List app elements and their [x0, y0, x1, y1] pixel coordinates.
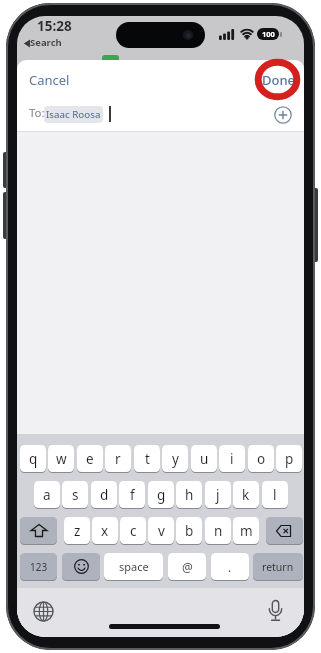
staticText: k	[242, 486, 250, 504]
button[interactable]	[267, 600, 284, 623]
button[interactable]: c	[120, 517, 146, 544]
button[interactable]: s	[62, 481, 88, 508]
staticText: @	[182, 559, 193, 575]
staticText: 100	[262, 29, 275, 39]
button[interactable]: w	[48, 445, 74, 472]
button[interactable]: t	[134, 445, 160, 472]
staticText: v	[158, 522, 165, 540]
button[interactable]: return	[253, 553, 303, 580]
staticText: m	[240, 522, 253, 540]
button[interactable]: n	[205, 517, 231, 544]
staticText: u	[200, 450, 209, 468]
button[interactable]: q	[20, 445, 46, 472]
staticText: 15:28	[37, 17, 72, 32]
staticText: space	[119, 559, 149, 574]
staticText: Done	[262, 71, 296, 89]
button[interactable]: k	[233, 481, 259, 508]
staticText: a	[43, 486, 51, 504]
staticText: w	[56, 450, 67, 468]
staticText: .	[228, 559, 232, 575]
button[interactable]: 123	[20, 553, 57, 580]
staticText: t	[145, 450, 150, 468]
button[interactable]: Isaac Roosa	[44, 106, 103, 123]
button[interactable]: a	[34, 481, 60, 508]
staticText: Cancel	[29, 71, 70, 89]
button[interactable]	[33, 601, 54, 622]
staticText: l	[273, 486, 277, 504]
button[interactable]: b	[176, 517, 202, 544]
staticText: 123	[30, 560, 48, 574]
button[interactable]	[274, 106, 292, 124]
button[interactable]: z	[64, 517, 90, 544]
staticText: g	[157, 486, 166, 504]
staticText: x	[101, 522, 109, 540]
button[interactable]: v	[148, 517, 174, 544]
staticText: o	[257, 450, 266, 468]
button[interactable]	[266, 517, 303, 544]
staticText: n	[214, 522, 223, 540]
button[interactable]: g	[148, 481, 174, 508]
button[interactable]	[62, 553, 100, 580]
staticText: s	[72, 486, 79, 504]
staticText: z	[74, 522, 81, 540]
staticText: p	[285, 450, 294, 468]
staticText: y	[172, 450, 179, 468]
button[interactable]: e	[77, 445, 103, 472]
button[interactable]: .	[211, 553, 249, 580]
button[interactable]: j	[205, 481, 231, 508]
staticText: b	[185, 522, 194, 540]
button[interactable]: p	[276, 445, 302, 472]
staticText: r	[115, 450, 121, 468]
staticText: d	[100, 486, 109, 504]
button[interactable]: f	[119, 481, 145, 508]
button[interactable]	[20, 517, 57, 544]
button[interactable]: l	[262, 481, 288, 508]
staticText: c	[130, 522, 137, 540]
button[interactable]: d	[91, 481, 117, 508]
staticText: h	[185, 486, 194, 504]
button[interactable]: o	[248, 445, 274, 472]
button[interactable]: i	[219, 445, 245, 472]
button[interactable]: Cancel	[29, 71, 73, 89]
staticText: j	[216, 486, 220, 504]
button[interactable]: space	[104, 553, 163, 580]
staticText: q	[29, 450, 38, 468]
button[interactable]: m	[233, 517, 259, 544]
button[interactable]: h	[176, 481, 202, 508]
staticText: Search	[30, 36, 62, 49]
button[interactable]: y	[162, 445, 188, 472]
staticText: To:	[29, 105, 45, 121]
staticText: return	[262, 560, 294, 574]
button[interactable]: r	[105, 445, 131, 472]
button[interactable]: u	[191, 445, 217, 472]
staticText: e	[86, 450, 94, 468]
button[interactable]: x	[92, 517, 118, 544]
button[interactable]: Done	[262, 71, 296, 89]
button[interactable]: @	[168, 553, 206, 580]
staticText: f	[130, 486, 135, 504]
staticText: Isaac Roosa	[46, 108, 101, 121]
staticText: i	[230, 450, 234, 468]
